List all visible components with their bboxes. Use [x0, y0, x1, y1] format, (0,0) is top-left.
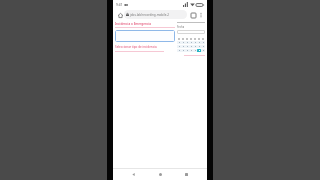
button[interactable] — [177, 49, 181, 52]
button[interactable] — [197, 41, 201, 44]
button[interactable] — [181, 45, 185, 48]
button[interactable] — [201, 49, 205, 52]
button[interactable] — [189, 49, 193, 52]
button[interactable]: jobs.lab/recording-mobile-2 — [124, 10, 187, 19]
button[interactable]: Recent apps — [181, 169, 192, 180]
button[interactable] — [189, 45, 193, 48]
button[interactable] — [181, 49, 185, 52]
button[interactable] — [201, 41, 205, 44]
button[interactable] — [193, 49, 197, 52]
staticText: Incidencia o Emergencia — [115, 22, 152, 26]
button[interactable] — [197, 49, 201, 52]
button[interactable] — [201, 45, 205, 48]
button[interactable]: Home — [116, 11, 124, 19]
button[interactable] — [193, 41, 197, 44]
button[interactable] — [185, 41, 189, 44]
button[interactable]: Back — [128, 169, 139, 180]
button[interactable] — [177, 45, 181, 48]
staticText: Fecha — [177, 25, 185, 29]
button[interactable]: More options — [197, 11, 204, 18]
button[interactable] — [181, 41, 185, 44]
staticText: jobs.lab/recording-mobile-2 — [130, 13, 170, 17]
button[interactable]: Home — [155, 169, 166, 180]
button[interactable] — [197, 45, 201, 48]
button[interactable] — [177, 30, 205, 34]
button[interactable] — [193, 45, 197, 48]
button[interactable] — [185, 45, 189, 48]
button[interactable] — [177, 41, 181, 44]
button[interactable]: Seleccionar tipo de incidencia — [115, 45, 157, 49]
staticText: 9:41 — [116, 3, 123, 7]
button[interactable] — [185, 49, 189, 52]
button[interactable] — [115, 30, 175, 42]
button[interactable] — [189, 41, 193, 44]
button[interactable]: Tabs — [189, 11, 197, 19]
